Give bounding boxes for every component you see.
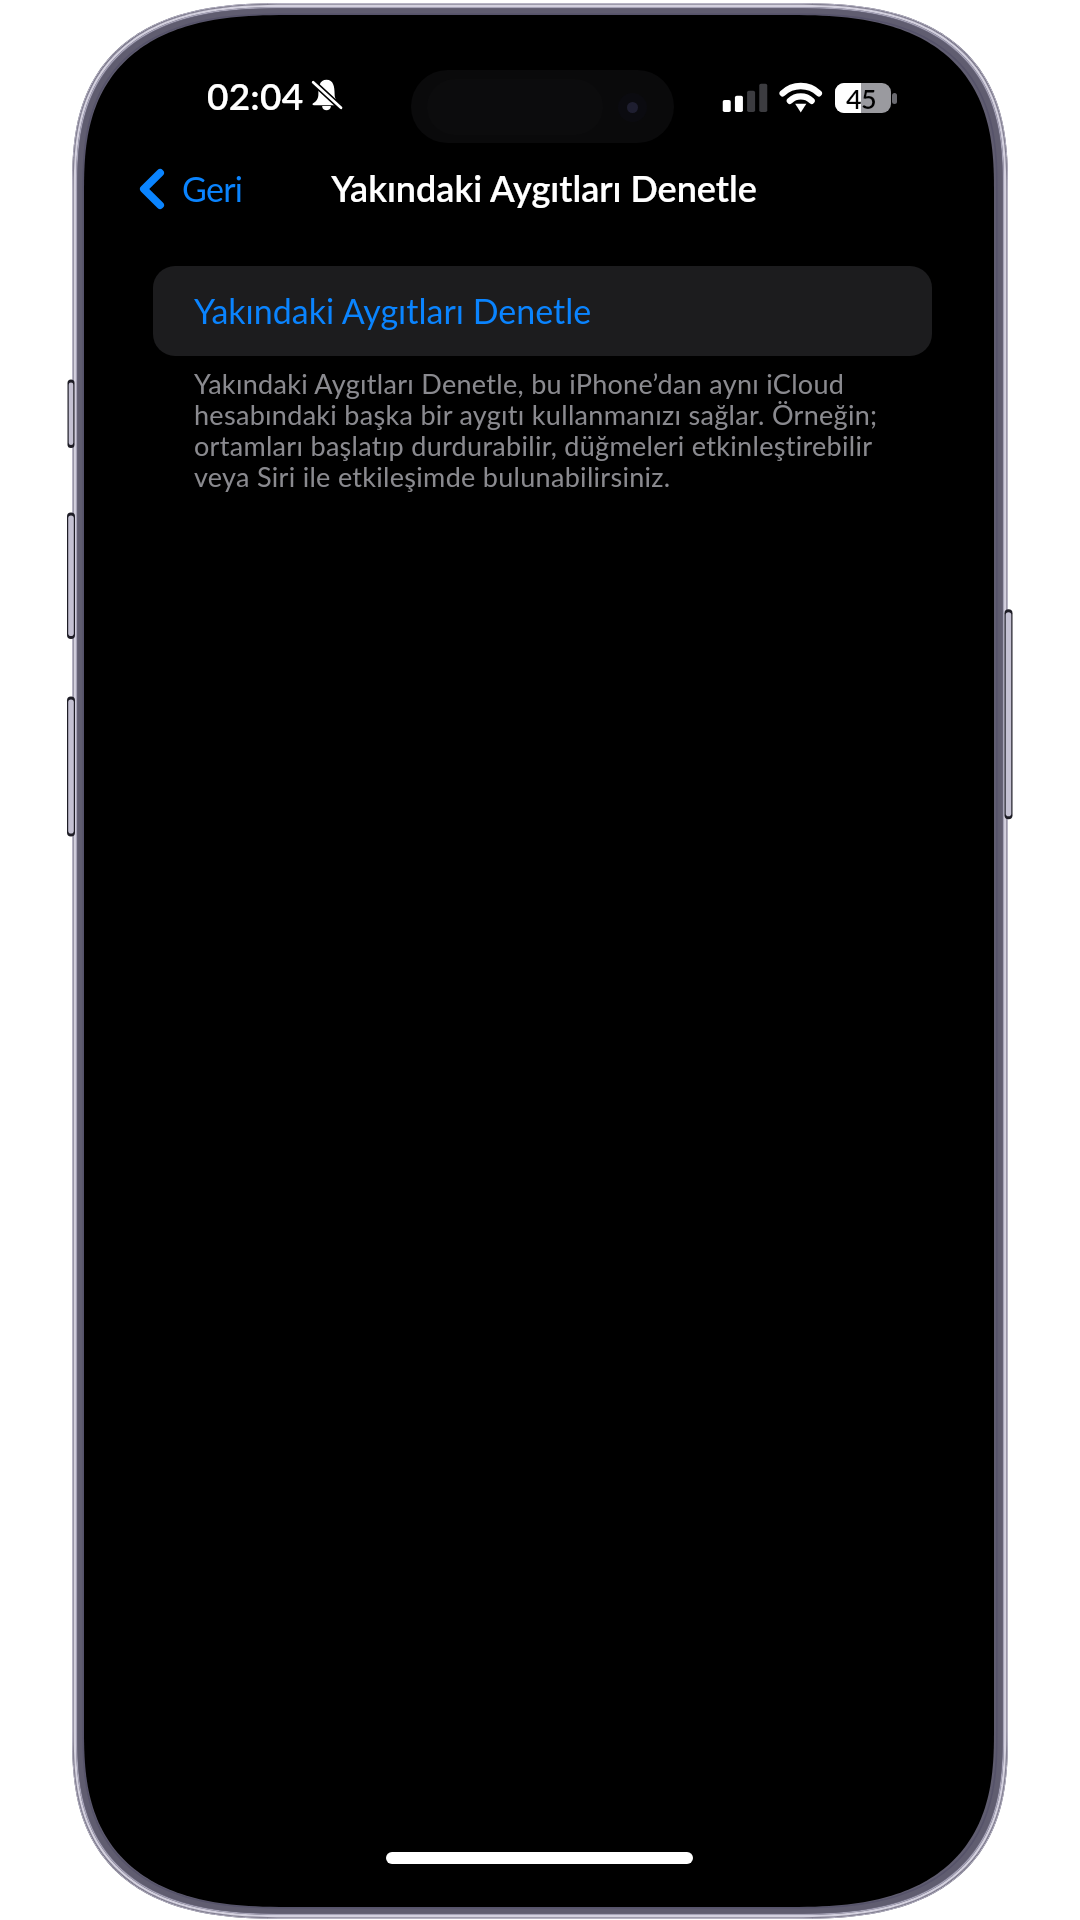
staticText: 02:04	[207, 73, 304, 117]
button[interactable]: Geri	[128, 158, 259, 219]
staticText: Yakındaki Aygıtları Denetle	[194, 290, 592, 331]
staticText: 45	[846, 82, 877, 112]
staticText: Geri	[182, 168, 243, 209]
staticText: Yakındaki Aygıtları Denetle, bu iPhone’d…	[194, 367, 894, 493]
staticText: Yakındaki Aygıtları Denetle	[327, 166, 761, 209]
button[interactable]: Yakındaki Aygıtları Denetle	[153, 266, 932, 356]
